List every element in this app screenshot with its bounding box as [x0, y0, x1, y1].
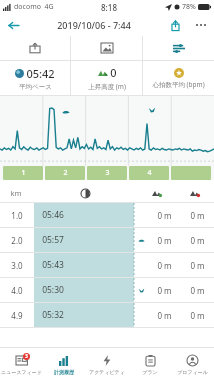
- button[interactable]: Chart: [143, 36, 214, 60]
- button[interactable]: 3: [0, 348, 42, 380]
- button[interactable]: 0: [71, 61, 142, 95]
- staticText: 8:18: [101, 2, 117, 13]
- button[interactable]: 心拍数平均 (bpm): [143, 61, 214, 95]
- staticText: 計測履歴: [54, 369, 74, 375]
- staticText: 0 m: [190, 310, 205, 321]
- button[interactable]: 3.0: [0, 253, 214, 277]
- staticText: 0 m: [157, 310, 172, 321]
- staticText: 3.0: [11, 260, 23, 271]
- button[interactable]: 4.0: [0, 278, 214, 302]
- button[interactable]: 3: [87, 166, 127, 180]
- button[interactable]: アクティビティ: [85, 348, 128, 380]
- staticText: 2019/10/06 - 7:44: [57, 19, 131, 31]
- button[interactable]: Photos: [71, 36, 142, 60]
- staticText: docomo: [14, 2, 41, 12]
- button[interactable]: 4.9: [0, 303, 214, 327]
- staticText: プラン: [142, 369, 158, 375]
- staticText: 2.0: [11, 235, 23, 246]
- staticText: アクティビティ: [89, 369, 125, 375]
- staticText: 3: [105, 168, 110, 178]
- staticText: 0: [110, 65, 117, 80]
- staticText: 0 m: [190, 260, 205, 271]
- staticText: 4.9: [11, 310, 23, 321]
- staticText: 0 m: [190, 235, 205, 246]
- staticText: 05:32: [42, 309, 64, 321]
- staticText: 0 m: [157, 210, 172, 221]
- button[interactable]: 1: [3, 166, 43, 180]
- staticText: 4G: [44, 2, 54, 12]
- staticText: 0 m: [157, 260, 172, 271]
- staticText: 1.0: [11, 210, 23, 221]
- button[interactable]: Share: [162, 14, 188, 36]
- button[interactable]: Back: [0, 14, 26, 36]
- staticText: 05:46: [42, 209, 64, 221]
- staticText: 0 m: [190, 210, 205, 221]
- staticText: 0 m: [157, 235, 172, 246]
- staticText: 05:43: [42, 259, 64, 271]
- staticText: プロフィール: [177, 369, 208, 375]
- button[interactable]: More options: [188, 14, 214, 36]
- button[interactable]: 1.0: [0, 203, 214, 227]
- button[interactable]: 05:42: [0, 61, 70, 95]
- staticText: ニュースフィード: [1, 369, 42, 375]
- button[interactable]: プラン: [128, 348, 171, 380]
- staticText: 3: [25, 353, 28, 360]
- staticText: 2: [63, 168, 68, 178]
- button[interactable]: 2.0: [0, 228, 214, 252]
- staticText: 05:30: [42, 284, 64, 296]
- staticText: 1: [21, 168, 26, 178]
- button[interactable]: 4: [129, 166, 169, 180]
- button[interactable]: 2: [45, 166, 85, 180]
- staticText: 05:42: [26, 66, 55, 81]
- staticText: 0 m: [157, 285, 172, 296]
- staticText: 78%: [182, 2, 196, 12]
- staticText: 4: [147, 168, 152, 178]
- staticText: 平均ペース: [19, 83, 52, 91]
- staticText: 05:57: [42, 234, 64, 246]
- staticText: 4.0: [11, 285, 23, 296]
- staticText: 0 m: [190, 285, 205, 296]
- staticText: 上昇高度 (m): [88, 82, 126, 91]
- staticText: 心拍数平均 (bpm): [152, 80, 205, 89]
- button[interactable]: Map: [0, 36, 70, 60]
- button[interactable]: プロフィール: [171, 348, 214, 380]
- staticText: km: [10, 188, 22, 198]
- button[interactable]: 計測履歴: [42, 348, 85, 380]
